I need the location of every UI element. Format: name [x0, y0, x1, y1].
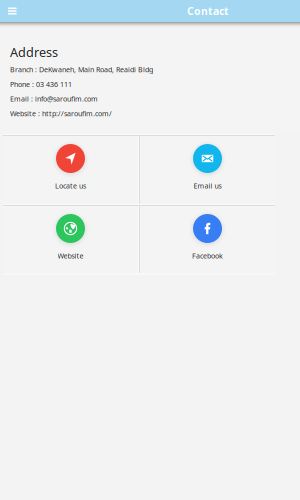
staticText: Locate us	[55, 181, 86, 191]
staticText: Facebook	[192, 251, 223, 261]
button[interactable]: Facebook	[140, 206, 275, 273]
staticText: Phone : 03 436 111	[10, 79, 72, 89]
button[interactable]: Locate us	[3, 136, 138, 204]
staticText: Email us	[193, 181, 221, 191]
staticText: Email : info@saroufim.com	[10, 94, 98, 104]
staticText: Address	[10, 43, 58, 61]
staticText: Contact	[187, 4, 229, 18]
staticText: Website : http://saroufim.com/	[10, 109, 112, 118]
staticText: Website	[57, 251, 83, 261]
button[interactable]: Website	[3, 206, 138, 273]
staticText: Branch : DeKwaneh, Main Road, Reaidi Bld…	[10, 65, 153, 74]
button[interactable]: Email us	[140, 136, 275, 204]
button[interactable]: Open navigation menu	[4, 0, 20, 21]
